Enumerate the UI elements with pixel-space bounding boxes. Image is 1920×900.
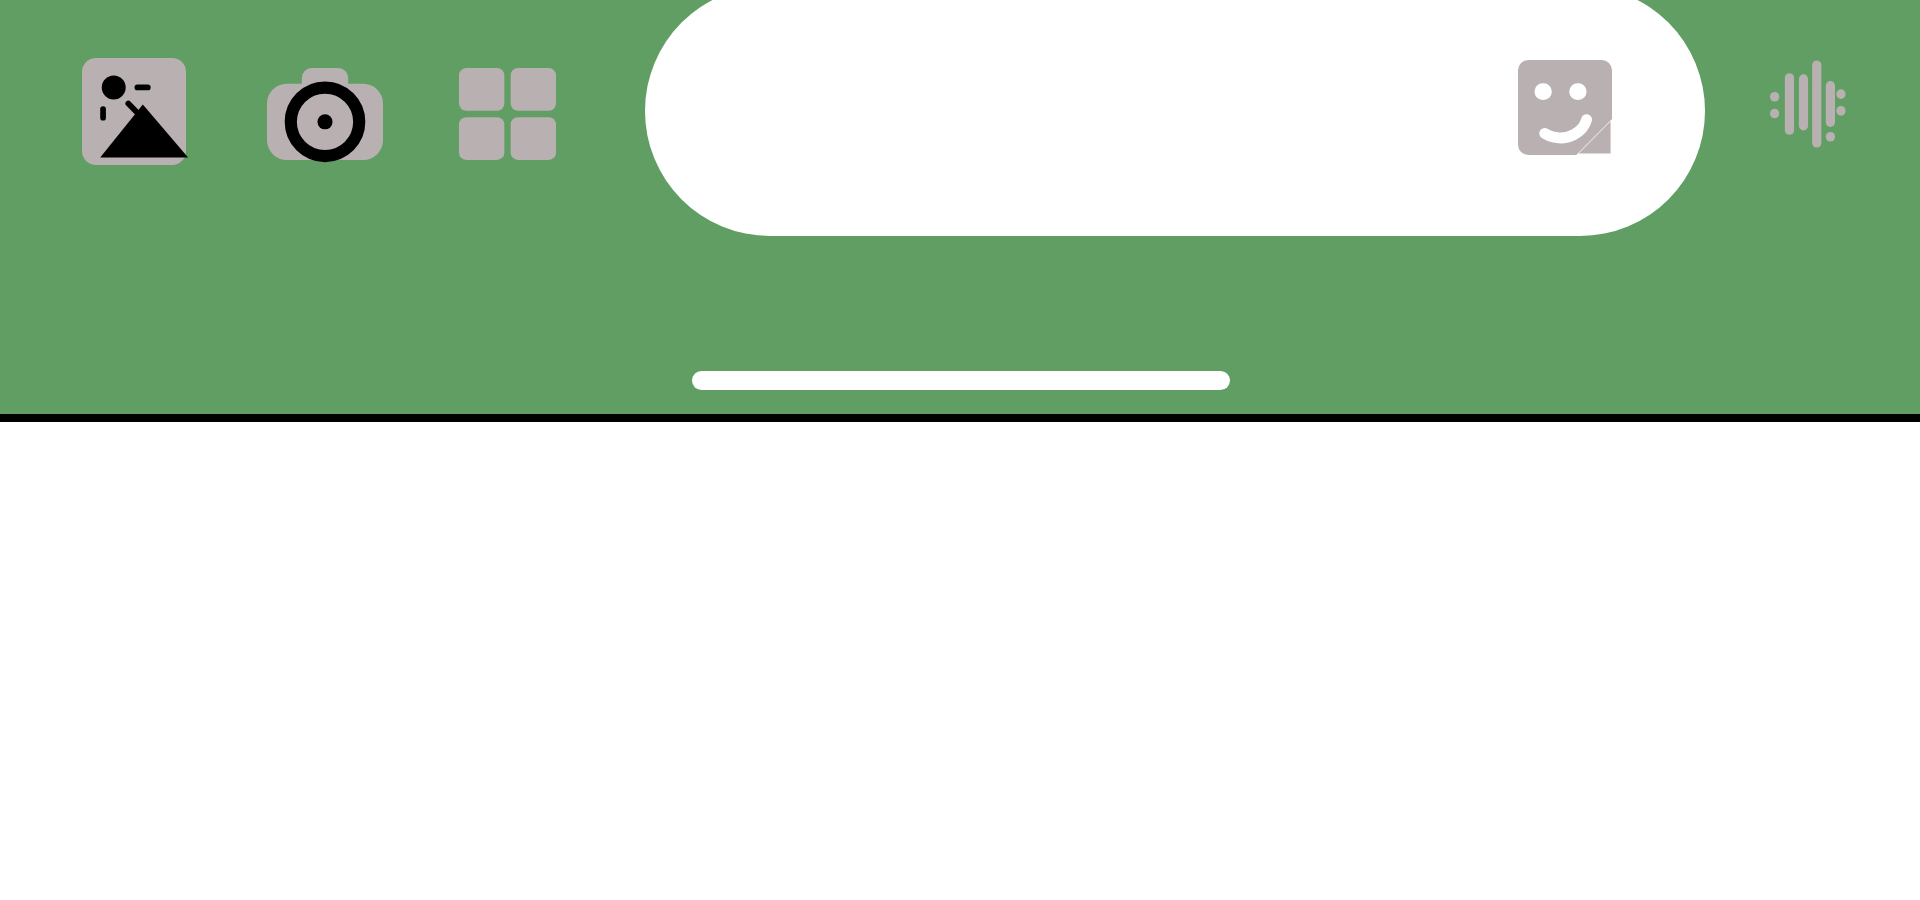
button[interactable]: Photos	[82, 58, 186, 165]
button[interactable]	[645, 0, 1705, 236]
button[interactable]: Voice assistant	[1768, 60, 1846, 148]
button[interactable]: Camera	[267, 68, 383, 160]
button[interactable]: Stickers	[1518, 60, 1612, 155]
button[interactable]: All apps	[459, 68, 556, 160]
